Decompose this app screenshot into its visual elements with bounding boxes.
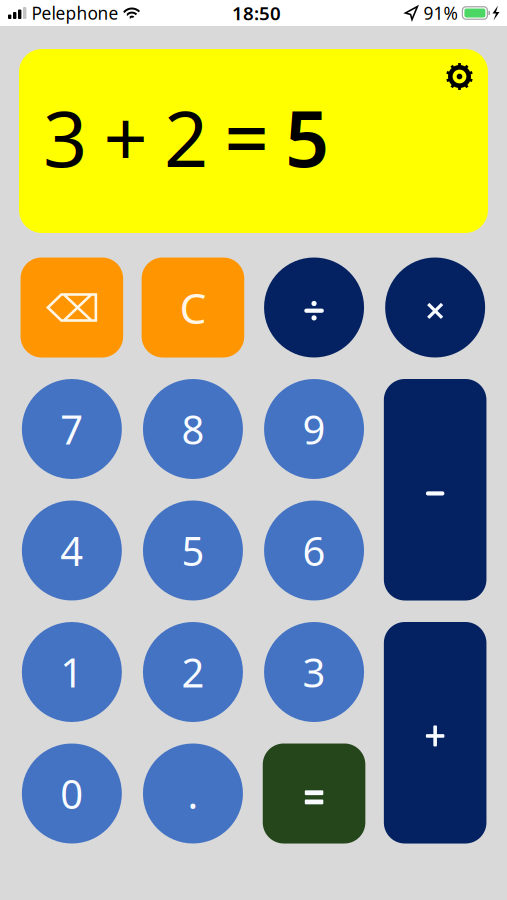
staticText: 5 bbox=[181, 524, 204, 577]
staticText: 3 bbox=[43, 86, 87, 188]
button[interactable] bbox=[263, 743, 365, 843]
staticText: C bbox=[179, 279, 206, 336]
staticText: = bbox=[224, 86, 268, 188]
staticText: 7 bbox=[60, 402, 83, 455]
staticText: 91% bbox=[423, 1, 457, 24]
staticText: 0 bbox=[60, 767, 83, 820]
button[interactable]: C bbox=[142, 257, 244, 357]
button[interactable] bbox=[384, 257, 486, 357]
staticText: Pelephone bbox=[31, 1, 118, 24]
button[interactable]: 0 bbox=[21, 743, 123, 843]
button[interactable]: 6 bbox=[263, 500, 365, 600]
button[interactable]: 2 bbox=[142, 622, 244, 722]
button[interactable]: 9 bbox=[263, 379, 365, 479]
button[interactable]: 3 bbox=[263, 622, 365, 722]
staticText: . bbox=[187, 767, 198, 820]
staticText: 2 bbox=[181, 645, 204, 698]
button[interactable]: 5 bbox=[142, 500, 244, 600]
button[interactable]: 3 bbox=[19, 49, 488, 233]
button[interactable] bbox=[21, 257, 123, 357]
staticText: 6 bbox=[303, 524, 326, 577]
button[interactable] bbox=[384, 622, 486, 843]
staticText: + bbox=[103, 86, 147, 188]
staticText: 2 bbox=[164, 86, 208, 188]
staticText: 8 bbox=[181, 402, 204, 455]
staticText: 5 bbox=[285, 86, 329, 188]
staticText: 4 bbox=[60, 524, 83, 577]
staticText: 9 bbox=[303, 402, 326, 455]
staticText: 18:50 bbox=[232, 1, 281, 25]
button[interactable]: 4 bbox=[21, 500, 123, 600]
button[interactable] bbox=[384, 379, 486, 600]
button[interactable]: . bbox=[142, 743, 244, 843]
button[interactable] bbox=[263, 257, 365, 357]
staticText: 1 bbox=[60, 645, 83, 698]
staticText: 3 bbox=[303, 645, 326, 698]
button[interactable]: 7 bbox=[21, 379, 123, 479]
button[interactable]: 1 bbox=[21, 622, 123, 722]
button[interactable]: 8 bbox=[142, 379, 244, 479]
